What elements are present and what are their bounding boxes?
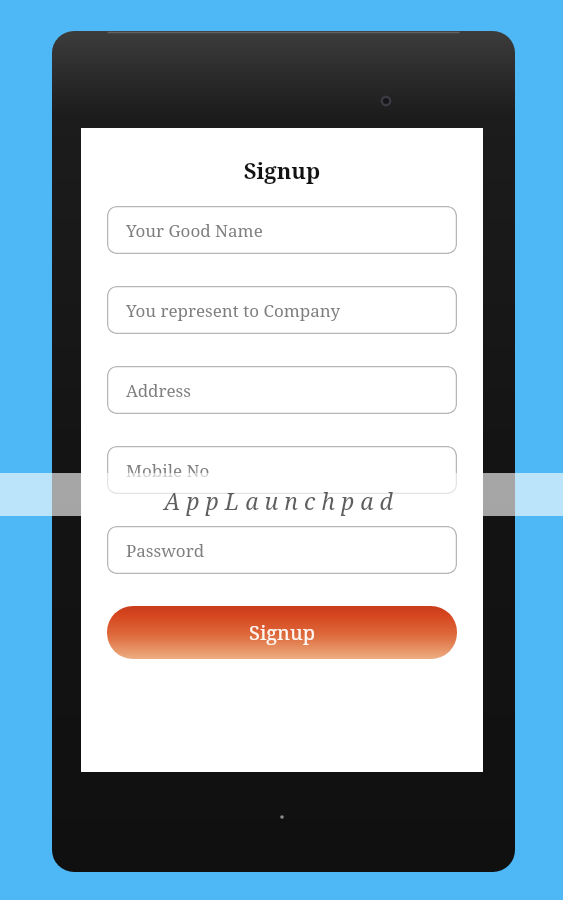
button[interactable]: Password — [107, 526, 457, 574]
button[interactable]: Signup — [107, 606, 457, 659]
staticText: Your Good Name — [126, 219, 263, 242]
button[interactable]: You represent to Company — [107, 286, 457, 334]
staticText: Signup — [81, 155, 483, 185]
button[interactable]: Mobile No — [107, 446, 457, 494]
staticText: Password — [126, 539, 205, 562]
button[interactable]: Address — [107, 366, 457, 414]
staticText: Address — [126, 379, 191, 402]
button[interactable]: Your Good Name — [107, 206, 457, 254]
staticText: You represent to Company — [126, 299, 340, 322]
staticText: Signup — [249, 619, 315, 646]
staticText: AppLaunchpad — [164, 485, 399, 516]
staticText: Mobile No — [126, 459, 210, 482]
